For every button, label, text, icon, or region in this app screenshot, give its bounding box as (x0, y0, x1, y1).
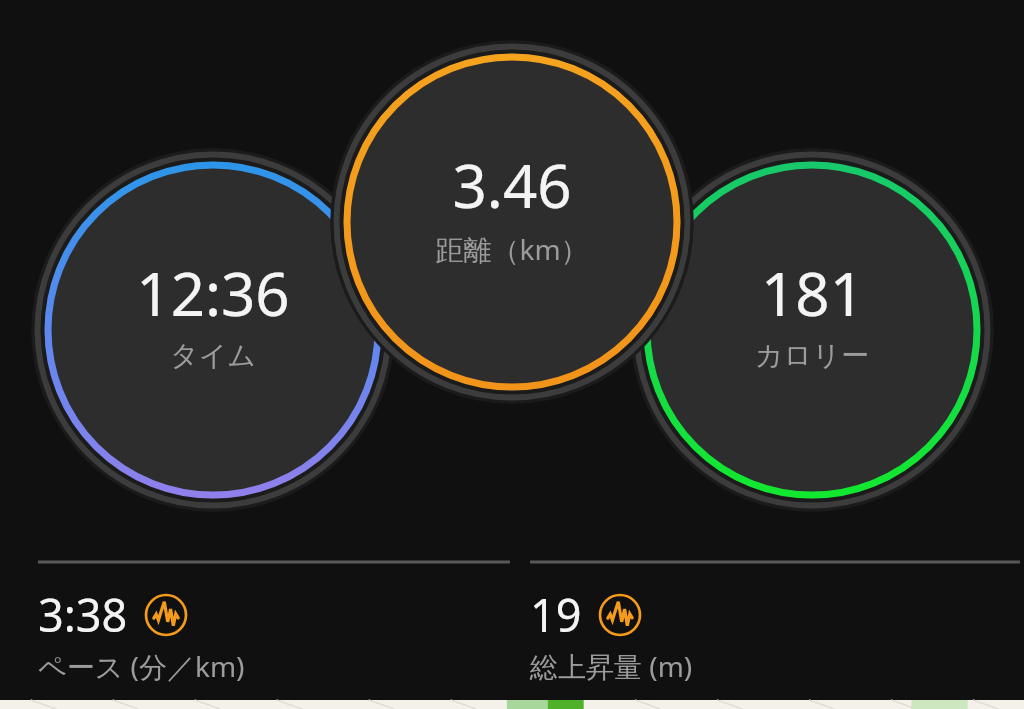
staticText: ペース (分／km) (38, 647, 245, 685)
button[interactable]: 12:36 (53, 252, 373, 373)
staticText: 3:38 (38, 584, 128, 645)
other: Elevation detail (598, 593, 642, 637)
button[interactable]: 181 (652, 252, 972, 373)
button[interactable]: 3.46 (352, 144, 672, 268)
staticText: カロリー (755, 338, 869, 373)
staticText: 距離（km） (435, 230, 589, 268)
staticText: 19 (530, 584, 582, 645)
button[interactable]: 3:38 (38, 560, 510, 685)
staticText: 181 (761, 252, 864, 334)
staticText: 総上昇量 (m) (530, 647, 693, 685)
button[interactable]: 19 (530, 560, 1020, 685)
staticText: 12:36 (136, 252, 290, 334)
staticText: タイム (170, 338, 256, 373)
other: Pace detail (144, 593, 188, 637)
staticText: 3.46 (452, 144, 572, 226)
